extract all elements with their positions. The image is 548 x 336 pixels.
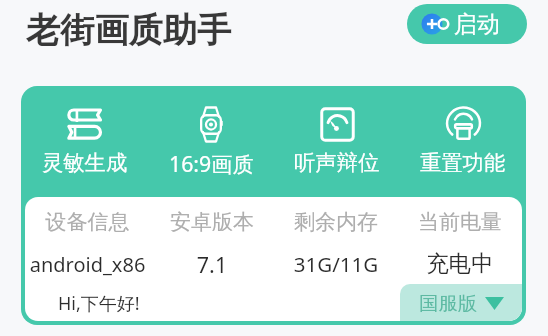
staticText: 充电中 xyxy=(398,250,522,278)
button[interactable]: 灵敏生成 xyxy=(21,86,148,197)
button[interactable]: 16:9画质 xyxy=(148,86,274,197)
staticText: Hi,下午好! xyxy=(58,291,140,316)
staticText: android_x86 xyxy=(25,251,150,278)
staticText: 设备信息 xyxy=(25,209,150,233)
staticText: 老街画质助手 xyxy=(26,9,232,52)
button[interactable]: 重置功能 xyxy=(400,86,526,197)
staticText: 安卓版本 xyxy=(150,209,274,233)
staticText: 剩余内存 xyxy=(274,209,398,233)
staticText: 31G/11G xyxy=(274,250,398,278)
button[interactable]: 启动 xyxy=(407,4,527,44)
button[interactable]: 听声辩位 xyxy=(274,86,400,197)
staticText: 听声辩位 xyxy=(294,149,380,176)
button[interactable]: 国服版 xyxy=(400,284,522,321)
staticText: 灵敏生成 xyxy=(42,149,128,176)
staticText: 启动 xyxy=(454,10,500,39)
staticText: 7.1 xyxy=(150,250,274,279)
staticText: 国服版 xyxy=(419,291,478,315)
staticText: 重置功能 xyxy=(420,149,506,176)
staticText: 当前电量 xyxy=(398,209,522,233)
staticText: 16:9画质 xyxy=(169,149,254,178)
